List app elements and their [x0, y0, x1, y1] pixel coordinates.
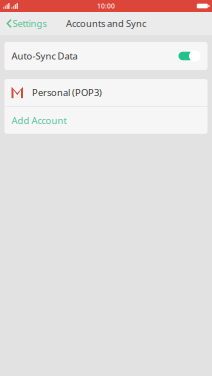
button[interactable]: Auto-Sync Data: [4, 42, 207, 70]
staticText: Add Account: [11, 114, 66, 126]
button[interactable]: Settings: [0, 12, 52, 35]
staticText: Auto-Sync Data: [11, 50, 77, 62]
button[interactable]: Add Account: [4, 107, 207, 134]
button[interactable]: Personal (POP3): [4, 79, 207, 106]
staticText: Settings: [12, 17, 46, 30]
staticText: Personal (POP3): [32, 86, 102, 99]
staticText: 10:00: [97, 2, 115, 10]
staticText: Accounts and Sync: [66, 17, 146, 30]
